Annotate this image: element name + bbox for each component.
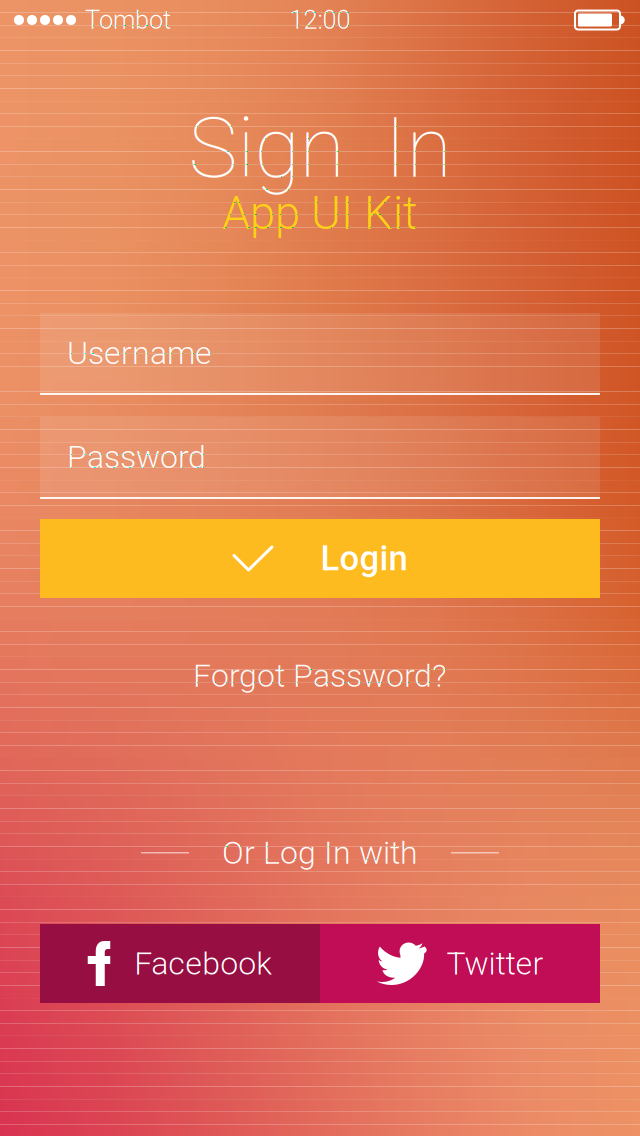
staticText: Password <box>67 438 206 476</box>
button[interactable]: Login <box>40 519 600 598</box>
staticText: Facebook <box>134 945 272 982</box>
staticText: Sign In <box>188 100 451 197</box>
staticText: Tombot <box>85 5 171 35</box>
button[interactable]: Facebook <box>40 924 320 1003</box>
staticText: 12:00 <box>289 5 350 35</box>
staticText: Forgot Password? <box>193 657 447 694</box>
staticText: Login <box>320 538 407 579</box>
staticText: App UI Kit <box>222 187 418 240</box>
staticText: Username <box>67 334 212 372</box>
button[interactable]: Forgot Password? <box>193 657 447 694</box>
staticText: Or Log In with <box>222 834 418 871</box>
staticText: Twitter <box>446 945 543 982</box>
button[interactable]: Twitter <box>320 924 600 1003</box>
